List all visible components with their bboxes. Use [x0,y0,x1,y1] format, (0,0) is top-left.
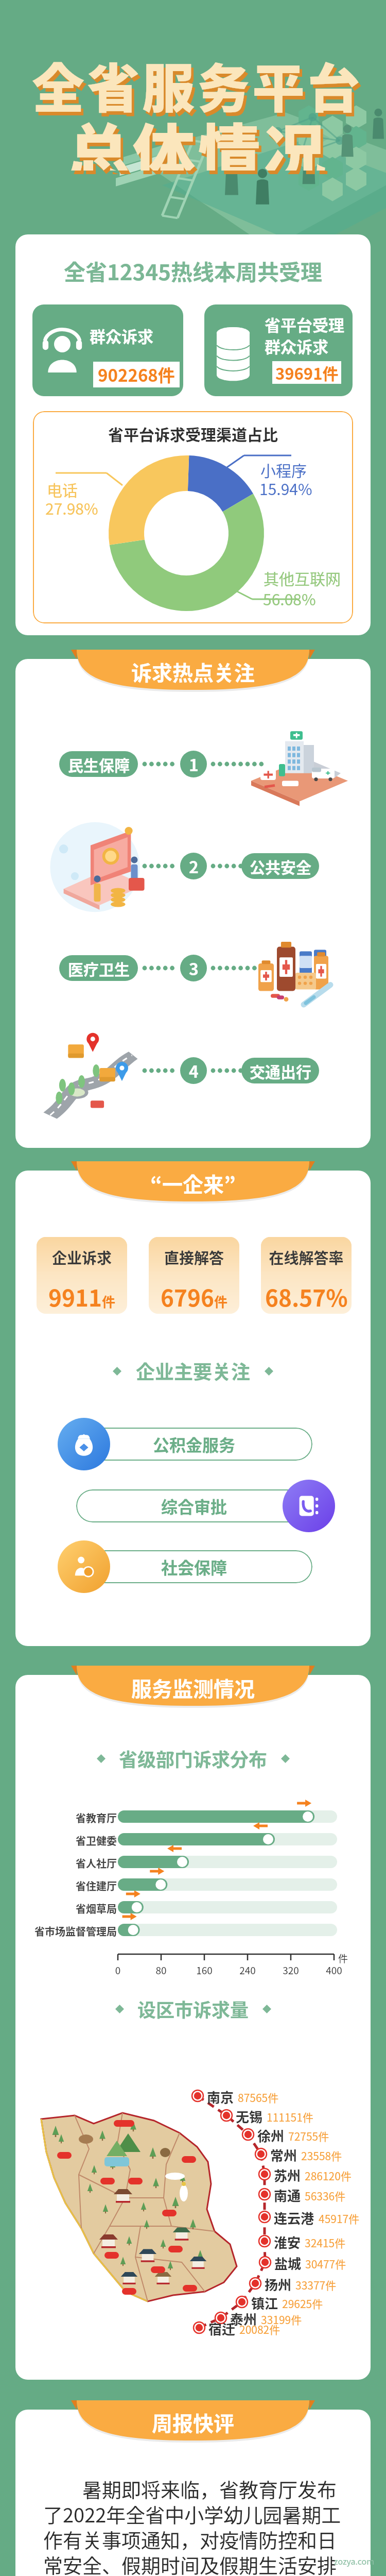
staticText: 省 [87,47,139,114]
button[interactable]: 企业诉求 [37,1237,127,1314]
staticText: 设区市诉求量 [137,1995,249,2022]
staticText: 台 [307,47,360,114]
staticText: 企业主要关注 [136,1357,250,1385]
button[interactable]: 公积金服务 [58,1418,110,1470]
staticText: 镇江 [251,2293,278,2313]
staticText: 省级部门诉求分布 [119,1745,268,1772]
staticText: 件 [214,1292,228,1311]
button[interactable]: 综合审批 [76,1489,312,1522]
button[interactable]: 社会保障 [76,1550,312,1583]
staticText: 无锡 [236,2107,263,2126]
staticText: 企业诉求 [37,1246,127,1268]
staticText: 南京 [207,2087,234,2107]
button[interactable]: 医疗卫生 [59,955,138,981]
staticText: 2 [189,854,199,878]
staticText: 交通出行 [250,1060,311,1082]
staticText: 56336件 [305,2188,346,2204]
staticText: 电话 [47,478,78,500]
staticText: 务 [197,47,250,114]
button[interactable]: 交通出行 [241,1058,319,1083]
staticText: 160 [191,1963,217,1977]
staticText: 80 [148,1963,174,1977]
staticText: 务 [200,50,252,117]
staticText: 服 [142,47,195,114]
staticText: 件 [338,1951,348,1965]
staticText: 27.98% [45,497,98,519]
staticText: 6796 [161,1280,214,1313]
staticText: 33377件 [295,2277,337,2293]
staticText: 服务监测情况 [71,1673,315,1703]
staticText: 群众诉求 [265,334,328,358]
staticText: 总 [70,107,133,174]
staticText: 33199件 [261,2312,302,2327]
staticText: 省平台受理 [265,313,344,336]
staticText: 泰州 [230,2309,257,2329]
staticText: 总 [67,104,130,171]
staticText: 体 [133,104,196,171]
staticText: 周报快评 [71,2408,315,2437]
staticText: 111151件 [267,2109,313,2125]
staticText: 小程序 [260,459,307,481]
staticText: 4 [189,1059,199,1082]
staticText: 3 [189,956,199,980]
staticText: 情 [201,107,264,174]
staticText: 15.94% [259,477,312,499]
staticText: 扬州 [265,2275,292,2294]
staticText: 省住建厅 [26,1878,117,1893]
staticText: zozya.com [334,2555,375,2567]
staticText: 286120件 [305,2168,352,2183]
staticText: 常州 [270,2145,297,2165]
staticText: 诉求热点关注 [71,657,315,687]
staticText: 39691件 [275,361,339,384]
staticText: 全 [34,50,87,117]
staticText: 平 [255,50,307,117]
staticText: 全 [32,47,84,114]
staticText: 全省12345热线本周共受理 [15,255,371,286]
staticText: 体 [135,107,198,174]
staticText: 320 [278,1963,304,1977]
button[interactable]: 在线解答率 [261,1237,352,1314]
staticText: 民生保障 [68,753,130,775]
button[interactable]: 公共安全 [241,853,319,879]
button[interactable]: 直接解答 [149,1237,239,1314]
staticText: 240 [235,1963,260,1977]
staticText: 省烟草局 [26,1901,117,1916]
staticText: 省教育厅 [26,1810,117,1825]
staticText: 省 [90,50,142,117]
staticText: 902268件 [98,362,175,387]
button[interactable]: 民生保障 [59,751,138,777]
staticText: 29625件 [282,2296,323,2311]
staticText: 省平台诉求受理渠道占比 [33,422,353,445]
staticText: 0 [105,1963,131,1977]
staticText: 其他互联网 [264,567,341,589]
staticText: 宿迁 [208,2319,236,2338]
staticText: 情 [198,104,261,171]
staticText: 32415件 [305,2235,346,2250]
button[interactable]: 群众诉求 [32,304,183,396]
staticText: 公积金服务 [153,1432,236,1456]
button[interactable]: 综合审批 [283,1480,335,1532]
staticText: 1 [189,752,199,776]
staticText: 群众诉求 [90,324,153,347]
staticText: 淮安 [274,2232,301,2252]
staticText: 省人社厅 [26,1856,117,1871]
staticText: 68.57% [265,1280,348,1313]
button[interactable]: 公积金服务 [76,1428,312,1461]
staticText: 医疗卫生 [68,957,130,979]
staticText: 连云港 [274,2208,314,2228]
staticText: 苏州 [274,2165,301,2185]
staticText: 56.08% [263,587,316,609]
staticText: 暑期即将来临，省教育厅发布了2022年全省中小学幼儿园暑期工作有关事项通知，对疫… [43,2475,344,2576]
staticText: 400 [321,1963,347,1977]
staticText: 况 [266,107,329,174]
staticText: 公共安全 [250,855,311,877]
button[interactable]: 社会保障 [58,1540,110,1593]
staticText: 社会保障 [161,1555,227,1579]
staticText: 省卫健委 [26,1833,117,1848]
staticText: 件 [102,1292,116,1311]
staticText: 9911 [48,1280,102,1313]
staticText: 徐州 [257,2126,285,2145]
staticText: 20082件 [239,2321,280,2337]
staticText: 南通 [274,2185,301,2205]
button[interactable]: 省平台受理 [204,304,353,396]
